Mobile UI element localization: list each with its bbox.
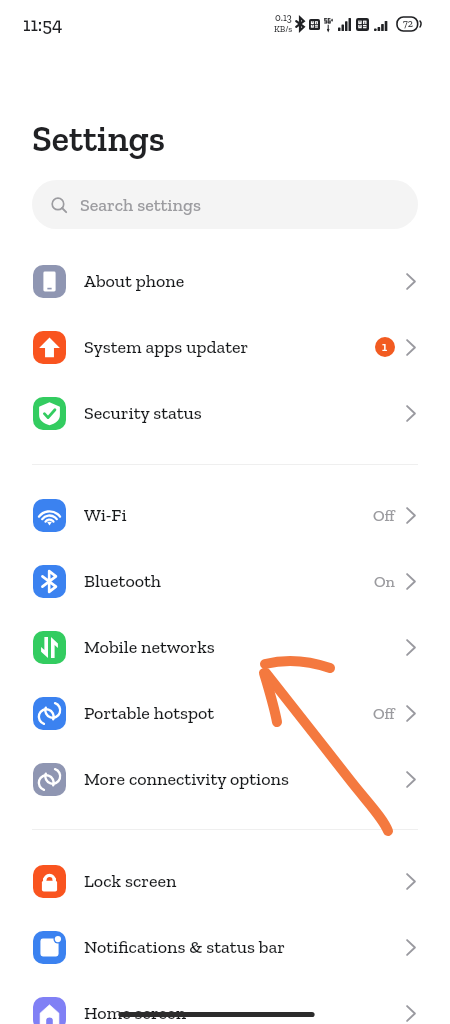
staticText: Mobile networks xyxy=(84,636,215,658)
button[interactable]: System apps updater xyxy=(0,314,450,380)
button[interactable]: More connectivity options xyxy=(0,746,450,812)
staticText: 11:54 xyxy=(23,13,63,36)
staticText: Portable hotspot xyxy=(84,702,215,724)
staticText: Notifications & status bar xyxy=(84,936,285,958)
button[interactable]: Wi-Fi xyxy=(0,482,450,548)
staticText: Off xyxy=(373,506,395,525)
staticText: Off xyxy=(373,704,395,723)
button[interactable]: Mobile networks xyxy=(0,614,450,680)
button[interactable]: About phone xyxy=(0,248,450,314)
button[interactable]: Notifications and status bar xyxy=(0,914,450,980)
staticText: Settings xyxy=(32,117,165,160)
staticText: Security status xyxy=(84,402,202,424)
staticText: Lock screen xyxy=(84,870,177,892)
button[interactable]: Home screen xyxy=(0,980,450,1024)
staticText: 1 xyxy=(382,339,388,355)
staticText: More connectivity options xyxy=(84,768,289,790)
button[interactable]: Search settings xyxy=(32,180,418,229)
button[interactable]: Portable hotspot xyxy=(0,680,450,746)
staticText: 0.13 xyxy=(275,12,292,24)
staticText: On xyxy=(374,572,395,591)
staticText: System apps updater xyxy=(84,336,249,358)
staticText: 72 xyxy=(403,18,413,30)
staticText: Bluetooth xyxy=(84,570,162,592)
button[interactable]: Lock screen xyxy=(0,848,450,914)
staticText: KB/s xyxy=(274,24,293,35)
button[interactable]: Security status xyxy=(0,380,450,446)
staticText: Wi-Fi xyxy=(84,504,127,526)
staticText: Search settings xyxy=(80,194,201,216)
button[interactable]: Bluetooth xyxy=(0,548,450,614)
staticText: Home screen xyxy=(84,1002,187,1024)
staticText: About phone xyxy=(84,270,185,292)
